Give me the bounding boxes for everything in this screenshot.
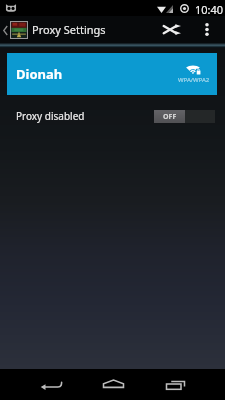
staticText: OFF [163, 112, 177, 122]
button[interactable]: Navigate up [0, 21, 31, 39]
button[interactable]: Proxy disabled [0, 103, 225, 129]
staticText: WPA/WPA2 [178, 76, 210, 84]
button[interactable]: Home [82, 369, 144, 400]
staticText: Dionah [16, 65, 63, 83]
staticText: Proxy Settings [32, 22, 106, 37]
button[interactable]: Dionah [7, 53, 217, 95]
button[interactable]: Back [20, 369, 82, 400]
button[interactable]: Recent apps [144, 369, 206, 400]
staticText: Proxy disabled [16, 109, 85, 123]
staticText: 10:40 [195, 2, 224, 17]
button[interactable]: More options [190, 16, 224, 43]
button[interactable]: Shuffle [154, 16, 190, 43]
